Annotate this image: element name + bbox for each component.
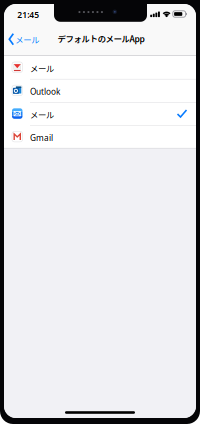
staticText: 21:45 — [17, 9, 39, 20]
button[interactable]: メール — [5, 33, 53, 46]
button[interactable]: メール — [4, 102, 196, 125]
staticText: メール — [30, 62, 54, 74]
staticText: メール — [30, 109, 54, 121]
staticText: Gmail — [30, 132, 53, 143]
button[interactable]: メール — [4, 56, 196, 79]
staticText: デフォルトのメールApp — [57, 33, 144, 45]
button[interactable]: Gmail — [4, 125, 196, 148]
staticText: Outlook — [30, 86, 60, 97]
staticText: メール — [15, 34, 39, 46]
button[interactable]: Outlook — [4, 79, 196, 102]
